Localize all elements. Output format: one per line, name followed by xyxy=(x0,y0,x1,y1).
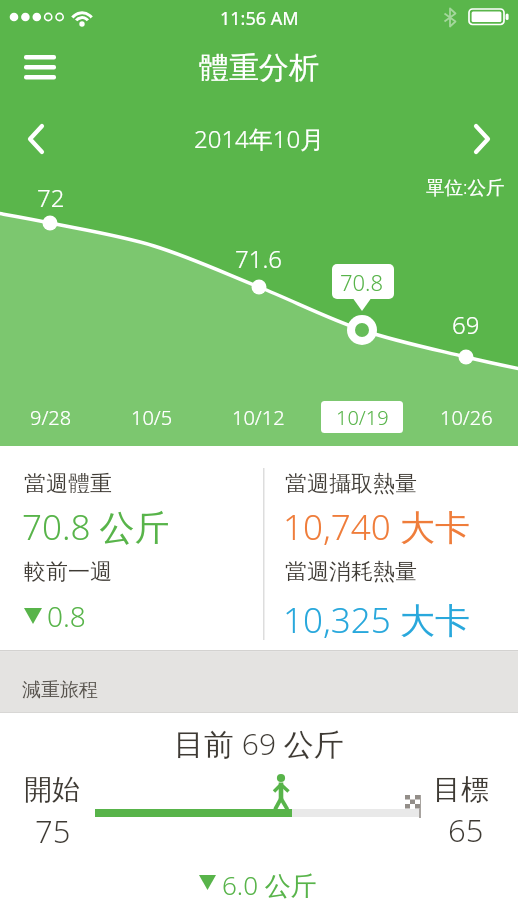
staticText: 10/5 xyxy=(131,404,173,431)
staticText: 10/19 xyxy=(336,404,389,431)
staticText: 6.0 公斤 xyxy=(222,867,317,903)
staticText: 減重旅程 xyxy=(22,678,98,702)
staticText: 單位:公斤 xyxy=(426,174,505,199)
staticText: 當週攝取熱量 xyxy=(285,470,417,498)
staticText: 71.6 xyxy=(235,242,282,275)
staticText: 70.8 xyxy=(340,267,384,297)
button[interactable] xyxy=(18,116,58,162)
staticText: 體重分析 xyxy=(199,49,319,87)
staticText: 75 xyxy=(35,810,71,852)
staticText: 69 xyxy=(452,308,480,341)
staticText: 較前一週 xyxy=(24,558,112,586)
staticText: 65 xyxy=(448,809,484,851)
button[interactable]: 10/5 xyxy=(111,401,193,433)
button[interactable] xyxy=(16,46,64,90)
staticText: 0.8 xyxy=(47,597,86,635)
staticText: 72 xyxy=(37,181,65,214)
button[interactable]: 10/12 xyxy=(217,401,299,433)
staticText: 目前 69 公斤 xyxy=(174,723,344,764)
staticText: 目標 xyxy=(433,772,489,807)
staticText: 10,325 大卡 xyxy=(283,596,470,644)
button[interactable]: 10/19 xyxy=(321,401,403,433)
button[interactable]: 9/28 xyxy=(10,401,92,433)
staticText: 當週體重 xyxy=(24,470,112,498)
staticText: 開始 xyxy=(24,772,80,807)
staticText: 70.8 公斤 xyxy=(22,503,170,551)
staticText: 9/28 xyxy=(30,404,72,431)
staticText: 10,740 大卡 xyxy=(283,503,470,551)
staticText: 10/12 xyxy=(232,404,285,431)
button[interactable] xyxy=(462,116,502,162)
button[interactable]: 10/26 xyxy=(425,401,507,433)
staticText: 10/26 xyxy=(440,404,493,431)
staticText: 11:56 AM xyxy=(220,6,299,31)
staticText: 2014年10月 xyxy=(194,122,325,155)
staticText: 當週消耗熱量 xyxy=(285,558,417,586)
